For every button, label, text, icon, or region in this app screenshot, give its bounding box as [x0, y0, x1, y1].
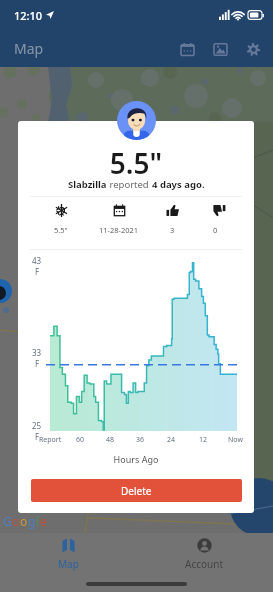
staticText: o — [12, 513, 20, 529]
staticText: F — [35, 358, 40, 369]
button[interactable]: Account — [136, 533, 273, 575]
staticText: Delete — [121, 484, 152, 498]
staticText: F — [35, 431, 40, 442]
button[interactable]: Photos — [208, 37, 232, 61]
staticText: g — [28, 513, 36, 529]
button[interactable]: Delete — [31, 479, 242, 502]
staticText: Slabzilla — [68, 178, 107, 191]
staticText: Map — [58, 557, 79, 571]
button[interactable]: 0 — [193, 204, 237, 244]
button[interactable]: 3 — [150, 204, 194, 244]
button[interactable]: 11-28-2021 — [97, 204, 141, 244]
staticText: 43 — [32, 255, 42, 266]
button[interactable]: Calendar — [175, 37, 199, 61]
staticText: 5.5" — [18, 144, 254, 182]
button[interactable]: Map — [0, 533, 136, 575]
staticText: F — [35, 266, 40, 277]
staticText: 5.5" — [54, 225, 68, 235]
button[interactable]: Settings — [241, 37, 265, 61]
staticText: 3 — [170, 225, 175, 235]
staticText: 60 — [76, 435, 85, 445]
staticText: 33 — [32, 347, 42, 358]
staticText: Now — [228, 435, 243, 445]
staticText: 4 days ago. — [152, 178, 205, 191]
staticText: 24 — [167, 435, 176, 445]
staticText: Report — [39, 435, 62, 445]
staticText: Map — [14, 39, 44, 58]
button[interactable]: 5.5" — [39, 204, 83, 244]
staticText: l — [36, 513, 40, 529]
staticText: 12:10 — [14, 8, 43, 23]
staticText: 36 — [136, 435, 145, 445]
staticText: reported — [107, 178, 152, 191]
staticText: 12 — [199, 435, 208, 445]
staticText: Account — [185, 557, 224, 571]
staticText: 11-28-2021 — [99, 225, 139, 235]
staticText: o — [20, 513, 28, 529]
staticText: G — [3, 513, 12, 529]
staticText: 48 — [106, 435, 115, 445]
staticText: 25 — [32, 420, 42, 431]
staticText: e — [40, 513, 47, 529]
staticText: Hours Ago — [18, 453, 254, 465]
staticText: 0 — [213, 225, 218, 235]
